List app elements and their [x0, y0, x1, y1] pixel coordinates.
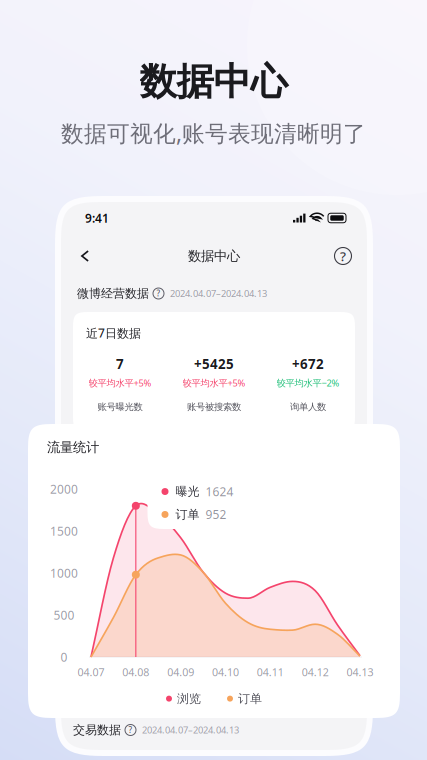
staticText: 数据中心: [188, 248, 240, 264]
staticText: 较平均水平+5%: [88, 377, 151, 389]
staticText: 2024.04.07–2024.04.13: [142, 724, 239, 736]
staticText: 9:41: [85, 210, 109, 226]
staticText: 04.08: [122, 665, 149, 679]
staticText: 1624: [205, 484, 233, 499]
staticText: 近7日数据: [86, 325, 141, 341]
staticText: 账号曝光数: [97, 401, 142, 412]
staticText: 0: [60, 649, 67, 665]
staticText: 1500: [50, 523, 78, 539]
staticText: 订单: [238, 691, 262, 706]
button[interactable]: Back: [72, 243, 98, 269]
staticText: 数据中心: [139, 59, 287, 105]
staticText: 04.13: [346, 665, 373, 679]
staticText: 1000: [50, 565, 78, 581]
staticText: 微博经营数据: [77, 286, 149, 301]
staticText: 2000: [50, 481, 78, 497]
staticText: ?: [156, 288, 160, 299]
staticText: 7: [116, 355, 124, 373]
staticText: 500: [53, 607, 74, 623]
staticText: 数据可视化,账号表现清晰明了: [61, 118, 366, 148]
staticText: 流量统计: [47, 439, 99, 455]
staticText: 订单: [175, 507, 199, 522]
staticText: 04.09: [167, 665, 194, 679]
staticText: 账号被搜索数: [187, 401, 241, 412]
staticText: +5425: [194, 355, 234, 373]
button[interactable]: Help: [330, 243, 356, 269]
staticText: 曝光: [175, 484, 199, 499]
staticText: 952: [205, 506, 226, 522]
staticText: 较平均水平−2%: [276, 377, 339, 389]
staticText: 浏览: [177, 691, 201, 706]
staticText: 2024.04.07–2024.04.13: [170, 287, 267, 300]
staticText: 04.07: [77, 665, 104, 679]
staticText: 交易数据: [73, 723, 121, 737]
staticText: 较平均水平+5%: [182, 377, 245, 389]
staticText: 04.12: [302, 665, 329, 679]
staticText: ?: [128, 725, 132, 735]
staticText: +672: [292, 355, 324, 373]
staticText: ?: [340, 247, 346, 265]
staticText: 询单人数: [290, 401, 326, 412]
staticText: 04.11: [257, 665, 284, 679]
staticText: 04.10: [212, 665, 239, 679]
